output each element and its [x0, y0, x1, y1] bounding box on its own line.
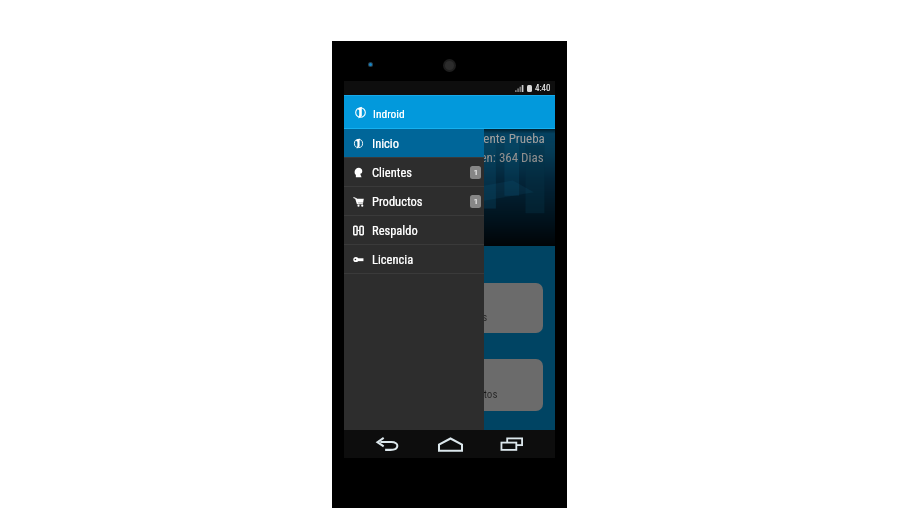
button[interactable]: Clientes [344, 158, 484, 186]
staticText: Productos [372, 194, 423, 209]
staticText: Inicio [372, 136, 399, 151]
staticText: 1 [474, 197, 478, 206]
staticText: 1 [474, 168, 478, 177]
button[interactable]: Recent apps [481, 430, 543, 458]
staticText: 4:40 [535, 83, 551, 94]
button[interactable]: Home [419, 430, 481, 458]
button[interactable]: Back [357, 430, 419, 458]
button[interactable]: Inicio [344, 129, 484, 157]
staticText: Productos [453, 388, 498, 401]
staticText: Clientes [452, 311, 488, 324]
button[interactable]: Respaldo [344, 216, 484, 244]
staticText: Indroid [373, 107, 405, 120]
staticText: Cliente Prueba [470, 131, 670, 146]
staticText: Clientes [372, 165, 412, 180]
staticText: Licencia [372, 252, 414, 267]
staticText: Expira en: 364 Dias [446, 150, 646, 165]
button[interactable]: Productos [362, 359, 543, 411]
button[interactable]: Licencia [344, 245, 484, 273]
button[interactable]: Productos [344, 187, 484, 215]
staticText: Respaldo [372, 223, 418, 238]
button[interactable]: Clientes [362, 283, 543, 333]
